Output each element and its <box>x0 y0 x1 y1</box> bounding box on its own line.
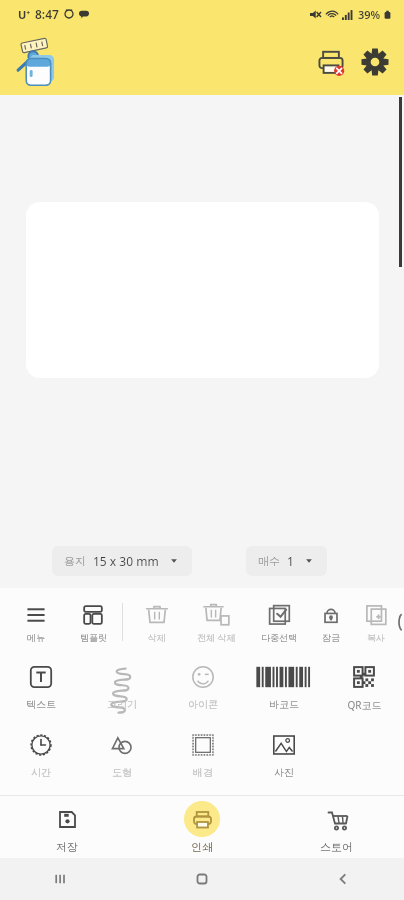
staticText: 39% <box>358 7 381 22</box>
staticText: 잠금 <box>322 632 340 643</box>
staticText: 8:47 <box>35 6 59 22</box>
button[interactable]: 삭제 <box>131 588 183 656</box>
staticText: 스토어 <box>320 840 353 854</box>
staticText: 아이콘 <box>188 698 218 711</box>
button[interactable]: 바코드 <box>243 662 324 711</box>
button[interactable]: 전체 삭제 <box>183 588 249 656</box>
staticText: 사진 <box>274 766 294 779</box>
staticText: U⁺ <box>18 7 31 22</box>
staticText: 바코드 <box>269 698 299 711</box>
staticText: 메뉴 <box>27 632 45 643</box>
staticText: 그리기 <box>107 698 137 711</box>
button[interactable]: 복사 <box>353 588 399 656</box>
staticText: 매수 <box>258 554 280 568</box>
staticText: 도형 <box>112 766 132 779</box>
button[interactable]: Save <box>0 796 134 858</box>
staticText: 용지 <box>64 554 86 568</box>
button[interactable]: Settings <box>360 47 390 77</box>
staticText: QR코드 <box>347 698 382 712</box>
staticText: 인쇄 <box>191 840 213 854</box>
button[interactable]: Printer not connected <box>314 45 348 79</box>
button[interactable]: Home <box>187 864 217 894</box>
button[interactable]: App logo <box>10 33 68 91</box>
staticText: 전체 삭제 <box>197 631 236 643</box>
button[interactable]: Store <box>269 796 404 858</box>
button[interactable]: 텍스트 <box>0 662 81 711</box>
staticText: 배경 <box>193 766 213 779</box>
button[interactable]: Back <box>328 864 358 894</box>
button[interactable]: 아이콘 <box>162 662 243 711</box>
button[interactable]: 사진 <box>243 730 324 779</box>
staticText: 1 <box>287 553 294 569</box>
button[interactable]: 잠금 <box>309 588 353 656</box>
staticText: 시간 <box>31 766 51 779</box>
button[interactable]: 매수 <box>246 546 327 576</box>
staticText: 삭제 <box>148 632 166 643</box>
button[interactable]: 그리기 <box>81 662 162 711</box>
staticText: 저장 <box>56 840 78 854</box>
staticText: 복사 <box>367 632 385 643</box>
button[interactable]: Recents <box>46 864 76 894</box>
staticText: 템플릿 <box>80 632 107 643</box>
button[interactable]: 시간 <box>0 730 81 779</box>
staticText: 다중선택 <box>261 632 297 643</box>
button[interactable]: 도형 <box>81 730 162 779</box>
button[interactable]: 다중선택 <box>249 588 309 656</box>
staticText: 텍스트 <box>26 698 56 711</box>
button[interactable]: 템플릿 <box>64 588 122 656</box>
staticText: 15 x 30 mm <box>93 553 159 569</box>
button[interactable]: QR코드 <box>324 662 404 712</box>
button[interactable]: Print <box>134 796 269 858</box>
button[interactable]: 배경 <box>162 730 243 779</box>
button[interactable]: 용지 <box>52 546 192 576</box>
button[interactable]: 메뉴 <box>8 588 64 656</box>
